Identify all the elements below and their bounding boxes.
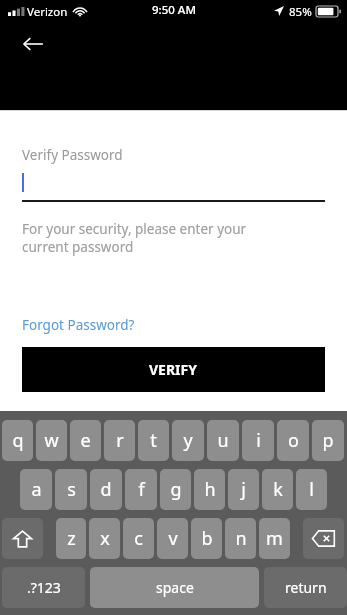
staticText: a [31, 477, 42, 502]
staticText: y [183, 428, 193, 453]
staticText: k [273, 477, 283, 502]
button[interactable]: e [70, 420, 101, 461]
staticText: current password [22, 238, 134, 256]
button[interactable]: Forgot Password? [22, 316, 135, 334]
button[interactable]: space [90, 567, 259, 608]
button[interactable]: s [55, 469, 87, 510]
staticText: Verify Password [22, 146, 123, 164]
button[interactable]: r [104, 420, 135, 461]
staticText: t [150, 428, 157, 453]
button[interactable]: f [125, 469, 157, 510]
staticText: r [116, 428, 124, 453]
button[interactable]: w [36, 420, 67, 461]
button[interactable]: k [262, 469, 293, 510]
staticText: For your security, please enter your [22, 220, 247, 238]
staticText: o [288, 428, 299, 453]
staticText: .?123 [27, 578, 61, 597]
button[interactable]: z [56, 518, 86, 559]
button[interactable]: VERIFY [22, 347, 325, 392]
button[interactable]: a [20, 469, 52, 510]
button[interactable]: u [207, 420, 239, 461]
button[interactable]: l [296, 469, 327, 510]
staticText: VERIFY [149, 360, 198, 379]
staticText: Verizon [27, 4, 68, 20]
staticText: Forgot Password? [22, 316, 135, 334]
staticText: 9:50 AM [152, 2, 196, 18]
button[interactable]: t [138, 420, 169, 461]
button[interactable]: return [264, 567, 347, 608]
button[interactable]: b [191, 518, 222, 559]
button[interactable]: m [259, 518, 290, 559]
staticText: e [80, 428, 91, 453]
button[interactable]: c [123, 518, 154, 559]
staticText: s [67, 477, 76, 502]
staticText: i [256, 428, 261, 453]
staticText: l [309, 477, 314, 502]
button[interactable]: .?123 [2, 567, 85, 608]
button[interactable]: v [157, 518, 188, 559]
staticText: return [285, 578, 327, 597]
button[interactable]: o [277, 420, 309, 461]
button[interactable]: g [160, 469, 191, 510]
button[interactable]: h [194, 469, 225, 510]
staticText: m [266, 526, 283, 551]
staticText: j [241, 477, 246, 502]
button[interactable]: Shift [2, 518, 43, 559]
button[interactable]: j [228, 469, 259, 510]
staticText: h [204, 477, 216, 502]
staticText: f [138, 477, 145, 502]
button[interactable]: Backspace [303, 518, 344, 559]
staticText: z [67, 526, 76, 551]
staticText: d [100, 477, 112, 502]
button[interactable]: i [242, 420, 274, 461]
staticText: n [235, 526, 247, 551]
button[interactable]: d [90, 469, 122, 510]
button[interactable]: q [2, 420, 33, 461]
button[interactable]: p [312, 420, 344, 461]
button[interactable]: Back [16, 27, 50, 61]
staticText: x [100, 526, 110, 551]
button[interactable]: x [89, 518, 120, 559]
staticText: q [12, 428, 24, 453]
staticText: 85% [289, 4, 312, 20]
button[interactable]: n [225, 518, 256, 559]
staticText: g [170, 477, 182, 502]
staticText: p [322, 428, 334, 453]
staticText: v [168, 526, 178, 551]
staticText: b [201, 526, 213, 551]
button[interactable]: y [172, 420, 204, 461]
staticText: u [217, 428, 229, 453]
staticText: space [156, 578, 194, 597]
staticText: c [134, 526, 143, 551]
staticText: w [44, 428, 59, 453]
